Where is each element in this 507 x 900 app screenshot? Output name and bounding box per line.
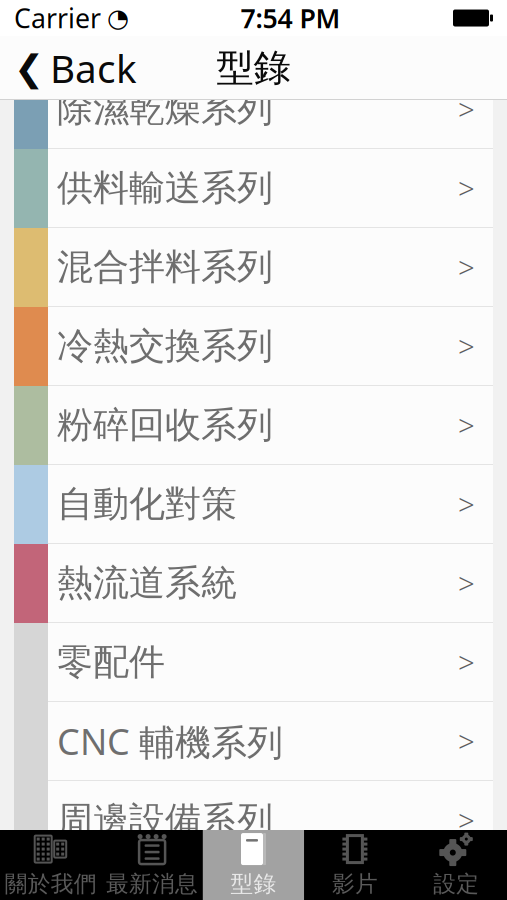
staticText: ❮ — [14, 48, 44, 88]
button[interactable]: 混合拌料系列 — [14, 228, 493, 307]
button[interactable]: 除濕乾燥系列 — [14, 70, 493, 149]
button[interactable]: 冷熱交換系列 — [14, 307, 493, 386]
staticText: 設定 — [433, 870, 479, 898]
staticText: 冷熱交換系列 — [57, 324, 273, 368]
staticText: 混合拌料系列 — [57, 245, 273, 289]
button[interactable]: 粉碎回收系列 — [14, 386, 493, 465]
button[interactable]: 自動化對策 — [14, 465, 493, 544]
staticText: Back — [50, 42, 137, 94]
staticText: 型錄 — [216, 45, 290, 91]
staticText: 影片 — [332, 870, 378, 898]
staticText: 供料輸送系列 — [57, 166, 273, 210]
staticText: > — [458, 563, 475, 602]
button[interactable]: 最新消息 — [101, 830, 203, 900]
staticText: > — [458, 89, 475, 128]
staticText: > — [458, 642, 475, 681]
staticText: > — [458, 405, 475, 444]
button[interactable]: CNC 輔機系列 — [14, 702, 493, 781]
staticText: 型錄 — [230, 870, 276, 898]
button[interactable]: ❮ — [0, 38, 151, 98]
staticText: 周邊設備系列 — [57, 798, 273, 842]
button[interactable]: 供料輸送系列 — [14, 149, 493, 228]
staticText: 除濕乾燥系列 — [57, 87, 273, 131]
staticText: > — [458, 484, 475, 523]
staticText: > — [458, 247, 475, 286]
button[interactable]: 零配件 — [14, 623, 493, 702]
button[interactable]: 設定 — [406, 830, 507, 900]
staticText: CNC 輔機系列 — [57, 717, 283, 765]
staticText: 自動化對策 — [57, 482, 237, 526]
staticText: 粉碎回收系列 — [57, 403, 273, 447]
staticText: 熱流道系統 — [57, 561, 237, 605]
button[interactable]: 型錄 — [203, 830, 304, 900]
staticText: 零配件 — [57, 640, 165, 684]
staticText: 最新消息 — [106, 870, 198, 898]
staticText: ◔ — [107, 4, 129, 32]
staticText: 7:54 PM — [240, 0, 340, 36]
button[interactable]: 周邊設備系列 — [14, 781, 493, 860]
button[interactable]: 關於我們 — [0, 830, 101, 900]
staticText: Carrier — [14, 0, 101, 36]
staticText: 關於我們 — [5, 870, 97, 898]
button[interactable]: 熱流道系統 — [14, 544, 493, 623]
staticText: > — [458, 721, 475, 760]
staticText: > — [458, 326, 475, 365]
staticText: > — [458, 168, 475, 207]
staticText: > — [458, 800, 475, 839]
button[interactable]: 影片 — [304, 830, 406, 900]
